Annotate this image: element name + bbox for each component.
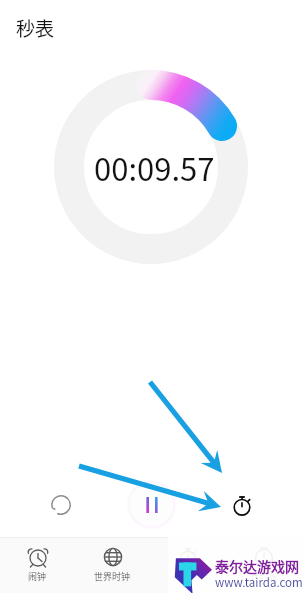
staticText: 秒表 — [179, 570, 198, 583]
button[interactable]: 闹钟 — [0, 537, 75, 593]
staticText: 秒表 — [16, 14, 55, 42]
staticText: 泰尔达游戏网 — [215, 556, 299, 576]
staticText: 00:09.57 — [94, 145, 215, 190]
button[interactable]: 世界时钟 — [75, 537, 150, 593]
button[interactable]: Pause — [126, 479, 177, 530]
staticText: www.tairda.com — [215, 574, 302, 591]
button[interactable]: Lap — [223, 486, 261, 524]
button[interactable]: 计时器 — [226, 537, 302, 593]
staticText: 计时器 — [250, 570, 278, 583]
button[interactable]: 秒表 — [150, 537, 226, 593]
button[interactable]: Reset — [41, 485, 80, 524]
staticText: 世界时钟 — [94, 570, 131, 583]
staticText: 闹钟 — [28, 570, 47, 583]
